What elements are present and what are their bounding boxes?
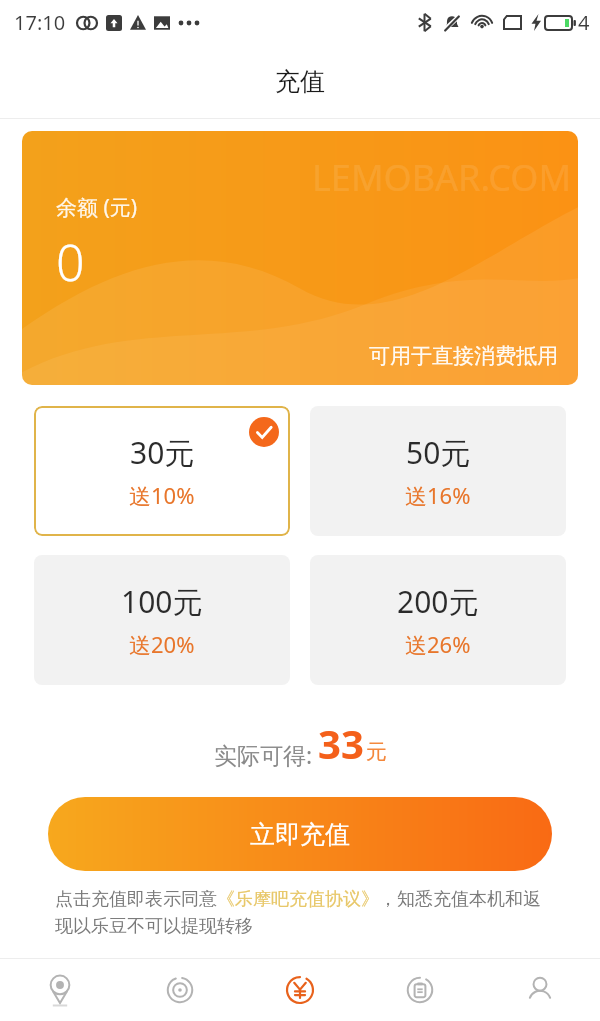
staticText: 立即充值	[250, 819, 350, 850]
button[interactable]: 立即充值	[48, 797, 552, 871]
staticText: 送26%	[405, 629, 471, 659]
staticText: 充值	[275, 66, 325, 97]
staticText: 送10%	[129, 480, 195, 510]
staticText: 4	[578, 9, 590, 36]
staticText: LEMOBAR.COM	[312, 153, 572, 202]
button[interactable]: Scan	[120, 959, 240, 1021]
staticText: 送20%	[129, 629, 195, 659]
button[interactable]: Profile	[480, 959, 600, 1021]
staticText: 送16%	[405, 480, 471, 510]
staticText: 17:10	[14, 9, 66, 36]
staticText: 200元	[397, 581, 479, 622]
button[interactable]: Recharge	[240, 959, 360, 1021]
button[interactable]: 50元	[310, 406, 566, 536]
staticText: 0	[56, 228, 85, 296]
button[interactable]: LEMOBAR.COM	[22, 131, 578, 385]
button[interactable]: 100元	[34, 555, 290, 685]
button[interactable]: 200元	[310, 555, 566, 685]
staticText: 50元	[406, 432, 471, 473]
staticText: 点击充值即表示同意《乐摩吧充值协议》，知悉充值本机和返现以乐豆不可以提现转移	[55, 888, 545, 938]
button[interactable]: Orders	[360, 959, 480, 1021]
staticText: 元	[366, 739, 387, 765]
staticText: 可用于直接消费抵用	[369, 343, 558, 369]
staticText: 30元	[130, 432, 195, 473]
button[interactable]: 30元	[34, 406, 290, 536]
staticText: 余额 (元)	[56, 193, 138, 222]
staticText: 100元	[121, 581, 203, 622]
button[interactable]: Nearby	[0, 959, 120, 1021]
staticText: 33	[318, 716, 364, 770]
staticText: 实际可得:	[214, 739, 313, 770]
